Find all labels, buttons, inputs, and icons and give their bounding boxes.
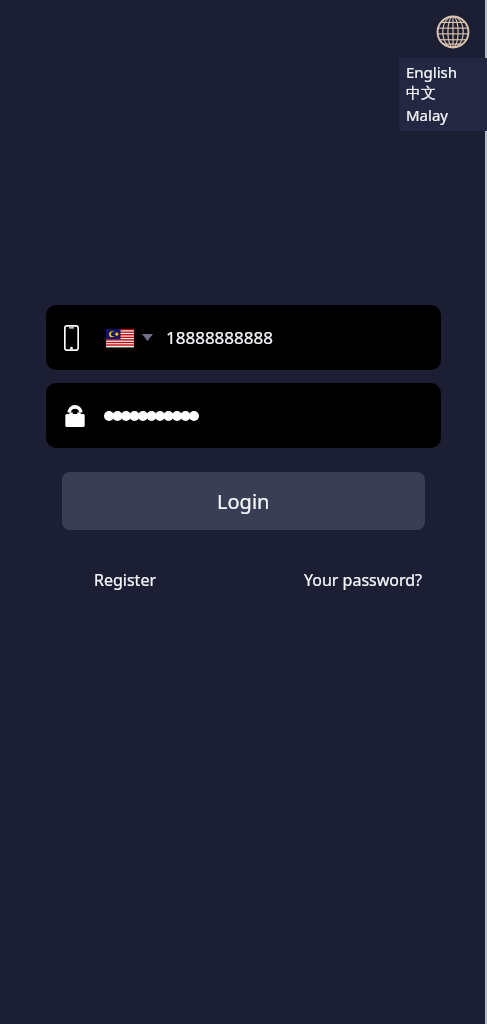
button[interactable]: 中文 (406, 83, 487, 104)
button[interactable] (46, 383, 441, 448)
button[interactable]: Login (62, 472, 425, 530)
button[interactable]: Your password? (302, 565, 425, 595)
staticText: English (406, 62, 458, 82)
button[interactable]: Change language (435, 14, 471, 50)
staticText: Register (94, 569, 157, 591)
staticText: Your password? (304, 569, 423, 591)
staticText: 中文 (406, 84, 436, 103)
button[interactable]: English (406, 61, 487, 83)
button[interactable]: Register (92, 565, 159, 595)
button[interactable]: 18888888888 (46, 305, 441, 370)
button[interactable]: Malay (406, 104, 487, 126)
staticText: Login (217, 488, 270, 515)
staticText: 18888888888 (166, 326, 273, 349)
staticText: Malay (406, 105, 448, 125)
